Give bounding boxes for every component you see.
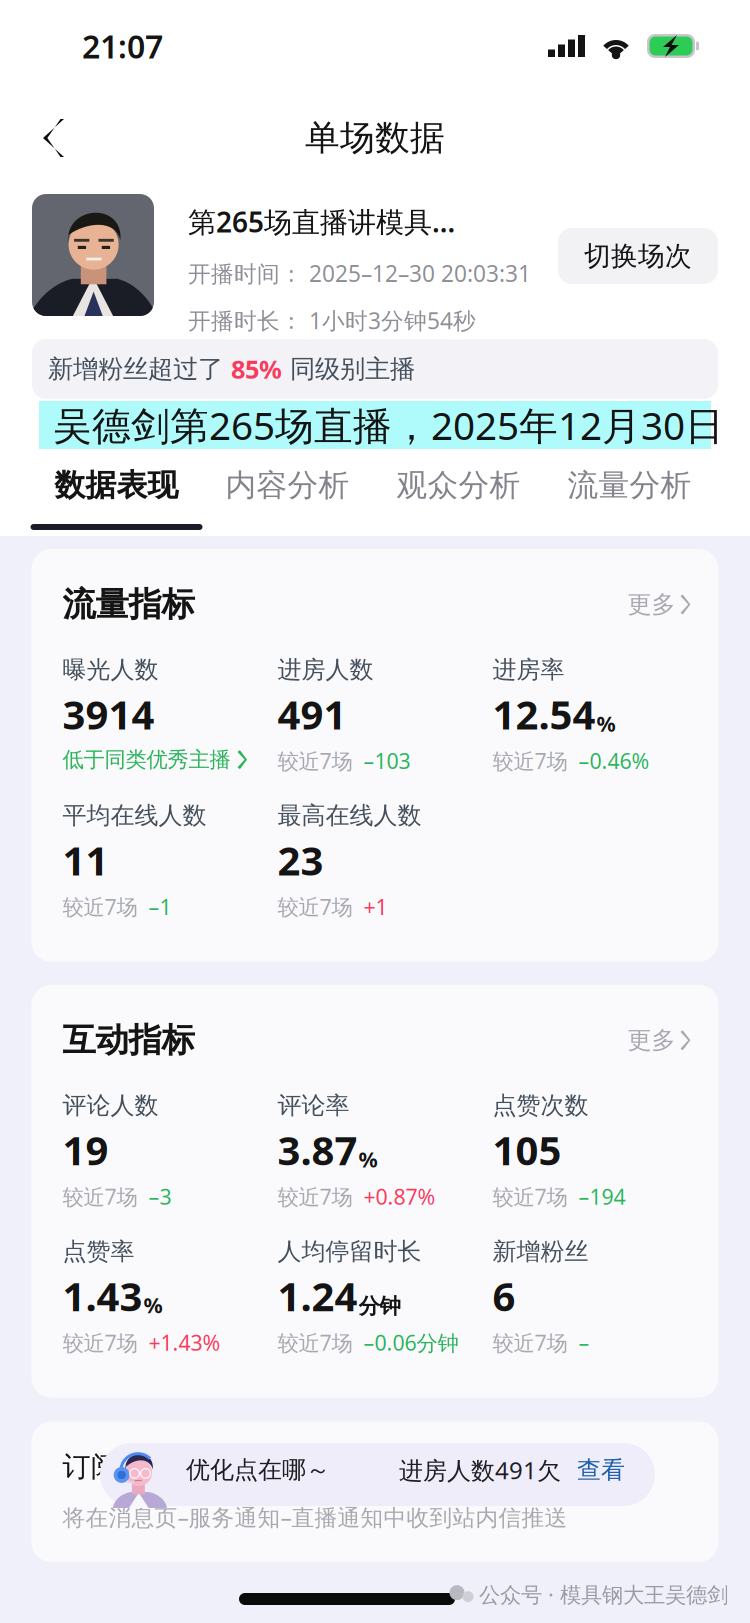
staticText: % bbox=[143, 1291, 162, 1319]
button[interactable]: 内容分析 bbox=[202, 453, 373, 536]
staticText: 3914 bbox=[62, 687, 154, 740]
staticText: 低于同类优秀主播 bbox=[62, 746, 230, 773]
staticText: 105 bbox=[492, 1123, 561, 1176]
staticText: 公众号 · 模具钢大王吴德剑 bbox=[479, 1580, 728, 1608]
staticText: +1.43% bbox=[148, 1328, 220, 1357]
staticText: 85% bbox=[231, 352, 282, 386]
button[interactable]: 流量分析 bbox=[544, 453, 715, 536]
staticText: 11 bbox=[62, 833, 108, 886]
staticText: 平均在线人数 bbox=[62, 801, 206, 830]
staticText: 较近7场 bbox=[492, 1328, 567, 1357]
staticText: 人均停留时长 bbox=[277, 1237, 421, 1266]
button[interactable]: 数据表现 bbox=[31, 453, 202, 536]
staticText: 订阅开播提醒 bbox=[62, 1450, 230, 1484]
staticText: 较近7场 bbox=[62, 892, 137, 921]
staticText: 较近7场 bbox=[277, 746, 352, 775]
staticText: 较近7场 bbox=[277, 1182, 352, 1211]
staticText: 较近7场 bbox=[277, 892, 352, 921]
staticText: 更多 bbox=[627, 590, 675, 619]
staticText: 进房人数491欠 bbox=[399, 1454, 561, 1486]
staticText: +1 bbox=[363, 892, 387, 921]
staticText: –103 bbox=[363, 746, 410, 775]
staticText: 互动指标 bbox=[62, 1020, 194, 1061]
staticText: 1.24 bbox=[277, 1269, 357, 1322]
staticText: 吴德剑第265场直播，2025年12月30日 bbox=[53, 399, 724, 451]
staticText: 较近7场 bbox=[62, 1328, 137, 1357]
button[interactable]: 更多 bbox=[627, 1025, 690, 1055]
staticText: 单场数据 bbox=[305, 117, 445, 159]
button[interactable]: AI assistant suggestion bbox=[100, 1432, 655, 1508]
staticText: 评论人数 bbox=[62, 1091, 158, 1120]
staticText: – bbox=[578, 1328, 589, 1357]
staticText: –0.46% bbox=[578, 746, 649, 775]
staticText: % bbox=[596, 709, 615, 737]
staticText: 19 bbox=[62, 1123, 108, 1176]
staticText: 流量分析 bbox=[567, 466, 691, 504]
button[interactable]: 更多 bbox=[627, 590, 690, 619]
button[interactable]: 低于同类优秀主播 bbox=[62, 746, 247, 773]
staticText: 点赞次数 bbox=[492, 1091, 588, 1120]
staticText: 新增粉丝超过了 bbox=[48, 353, 231, 384]
staticText: 较近7场 bbox=[492, 746, 567, 775]
staticText: +0.87% bbox=[363, 1182, 435, 1211]
staticText: 23 bbox=[277, 833, 323, 886]
staticText: 查看 bbox=[577, 1455, 625, 1485]
staticText: 分钟 bbox=[358, 1293, 400, 1319]
staticText: 评论率 bbox=[277, 1091, 349, 1120]
staticText: –194 bbox=[578, 1182, 625, 1211]
staticText: 将在消息页–服务通知–直播通知中收到站内信推送 bbox=[62, 1502, 567, 1532]
staticText: 491 bbox=[277, 687, 346, 740]
staticText: 更多 bbox=[627, 1025, 675, 1055]
staticText: 切换场次 bbox=[584, 240, 692, 272]
button[interactable]: 切换场次 bbox=[558, 228, 718, 284]
staticText: –0.06分钟 bbox=[363, 1328, 458, 1357]
staticText: 较近7场 bbox=[277, 1328, 352, 1357]
staticText: 第265场直播讲模具… bbox=[188, 203, 455, 240]
staticText: 最高在线人数 bbox=[277, 801, 421, 830]
staticText: 内容分析 bbox=[225, 466, 349, 504]
staticText: 观众分析 bbox=[396, 466, 520, 504]
staticText: 进房人数 bbox=[277, 655, 373, 684]
staticText: 点赞率 bbox=[62, 1237, 134, 1266]
button[interactable]: Back bbox=[0, 92, 107, 184]
staticText: % bbox=[358, 1145, 377, 1173]
button[interactable]: 观众分析 bbox=[373, 453, 544, 536]
staticText: 6 bbox=[492, 1269, 515, 1322]
staticText: –3 bbox=[148, 1182, 171, 1211]
staticText: 3.87 bbox=[277, 1123, 357, 1176]
staticText: 较近7场 bbox=[62, 1182, 137, 1211]
staticText: 流量指标 bbox=[62, 584, 194, 625]
staticText: 12.54 bbox=[492, 687, 595, 740]
staticText: 同级别主播 bbox=[282, 353, 415, 384]
staticText: 进房率 bbox=[492, 655, 564, 684]
staticText: 较近7场 bbox=[492, 1182, 567, 1211]
staticText: 曝光人数 bbox=[62, 655, 158, 684]
staticText: 开播时间： 2025–12–30 20:03:31 bbox=[188, 258, 531, 288]
staticText: 21:07 bbox=[82, 25, 163, 67]
staticText: 1.43 bbox=[62, 1269, 142, 1322]
staticText: 新增粉丝 bbox=[492, 1237, 588, 1266]
staticText: 数据表现 bbox=[54, 466, 178, 504]
staticText: 开播时长： 1小时3分钟54秒 bbox=[188, 305, 476, 335]
staticText: –1 bbox=[148, 892, 171, 921]
staticText: 优化点在哪～ bbox=[186, 1455, 330, 1485]
